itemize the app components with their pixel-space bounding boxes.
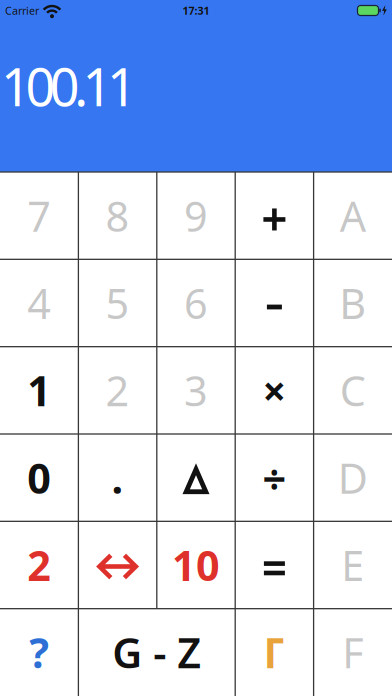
button[interactable]: 2 <box>78 347 157 434</box>
button[interactable]: A <box>314 172 392 259</box>
button[interactable]: 0 <box>0 434 78 521</box>
button[interactable]: 3 <box>157 347 235 434</box>
staticText: ? <box>29 625 49 680</box>
button[interactable] <box>78 521 157 609</box>
button[interactable]: 7 <box>0 172 78 259</box>
button[interactable] <box>235 259 314 347</box>
button[interactable]: 10 <box>157 521 235 609</box>
staticText: 10 <box>172 538 220 592</box>
staticText: 8 <box>106 188 130 243</box>
button[interactable]: × <box>235 347 314 434</box>
button[interactable]: . <box>78 434 157 521</box>
button[interactable]: 1 <box>0 347 78 434</box>
staticText: Carrier <box>5 3 39 18</box>
staticText: 1 <box>27 363 51 418</box>
button[interactable]: E <box>314 521 392 609</box>
staticText: G - Z <box>112 625 201 680</box>
staticText: C <box>340 363 366 418</box>
button[interactable]: G - Z <box>78 609 235 696</box>
button[interactable] <box>157 434 235 521</box>
staticText: × <box>262 363 286 418</box>
staticText: 2 <box>27 538 51 592</box>
button[interactable]: D <box>314 434 392 521</box>
button[interactable]: ? <box>0 609 78 696</box>
button[interactable]: Γ <box>235 609 314 696</box>
staticText: 6 <box>184 276 208 330</box>
staticText: B <box>339 276 366 330</box>
button[interactable]: B <box>314 259 392 347</box>
staticText: 3 <box>184 363 208 418</box>
staticText: . <box>112 450 124 505</box>
button[interactable]: 9 <box>157 172 235 259</box>
button[interactable]: F <box>314 609 392 696</box>
button[interactable] <box>235 172 314 259</box>
button[interactable]: 5 <box>78 259 157 347</box>
staticText: 7 <box>27 188 51 243</box>
staticText: 2 <box>106 363 130 418</box>
staticText: E <box>341 538 364 592</box>
staticText: 17:31 <box>182 3 209 18</box>
staticText: 5 <box>106 276 130 330</box>
button[interactable]: 8 <box>78 172 157 259</box>
staticText: ÷ <box>262 450 286 505</box>
button[interactable]: 6 <box>157 259 235 347</box>
staticText: 9 <box>184 188 208 243</box>
staticText: D <box>338 450 368 505</box>
button[interactable]: ÷ <box>235 434 314 521</box>
staticText: Γ <box>263 625 285 680</box>
staticText: 0 <box>27 450 51 505</box>
button[interactable]: 4 <box>0 259 78 347</box>
button[interactable] <box>235 521 314 609</box>
button[interactable]: 2 <box>0 521 78 609</box>
staticText: F <box>342 625 363 680</box>
button[interactable]: C <box>314 347 392 434</box>
staticText: 100.11 <box>1 51 137 121</box>
staticText: 4 <box>27 276 51 330</box>
staticText: A <box>340 188 366 243</box>
